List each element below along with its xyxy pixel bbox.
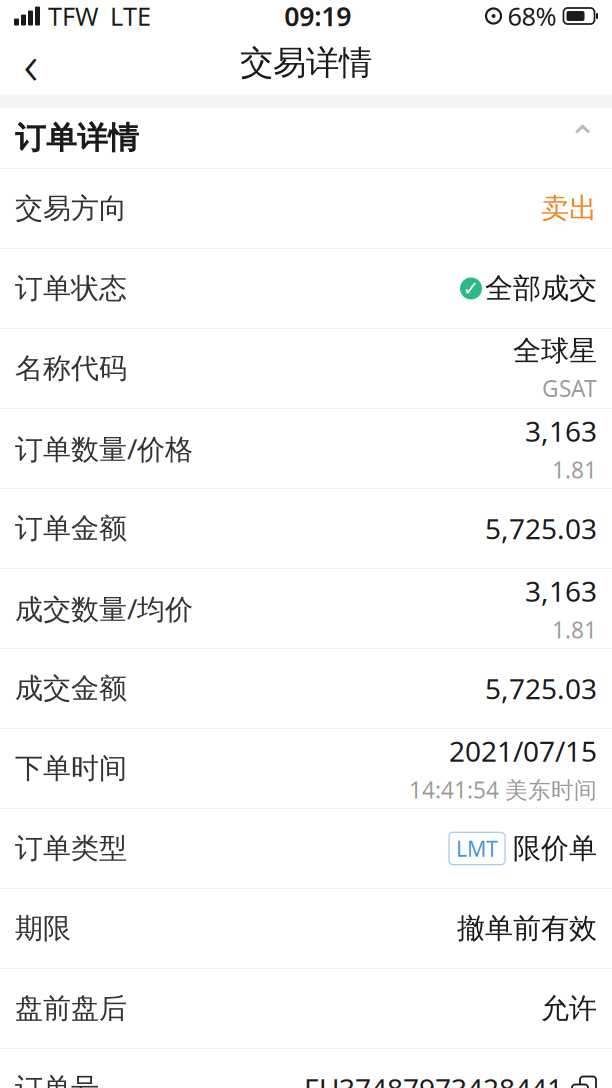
staticText: ✓ [462, 277, 479, 300]
staticText: 限价单 [513, 831, 597, 866]
staticText: GSAT [542, 373, 597, 403]
staticText: 卖出 [541, 191, 597, 226]
staticText: 3,163 [525, 572, 597, 610]
staticText: 全部成交 [485, 271, 597, 306]
staticText: 交易方向 [15, 191, 127, 226]
staticText: 5,725.03 [485, 670, 597, 707]
staticText: 撤单前有效 [457, 911, 597, 946]
staticText: 09:19 [284, 0, 351, 34]
staticText: LTE [110, 0, 151, 33]
staticText: 3,163 [525, 412, 597, 450]
staticText: 成交金额 [15, 671, 127, 706]
button[interactable]: 订单详情 [0, 108, 612, 168]
staticText: ⌃ [568, 118, 597, 158]
staticText: LMT [456, 834, 498, 863]
staticText: 68% [507, 0, 556, 33]
staticText: 订单详情 [15, 119, 139, 157]
staticText: 1.81 [552, 454, 597, 485]
staticText: 14:41:54 美东时间 [409, 774, 597, 805]
staticText: 交易详情 [240, 42, 372, 83]
staticText: TFW [48, 0, 99, 33]
staticText: 5,725.03 [485, 510, 597, 547]
staticText: 全球星 [513, 334, 597, 368]
staticText: 订单数量/价格 [15, 430, 193, 467]
staticText: 允许 [541, 991, 597, 1026]
staticText: 期限 [15, 911, 71, 946]
staticText: FU37487973428441 [304, 1070, 563, 1088]
button[interactable]: Copy order number [563, 1075, 597, 1088]
staticText: 订单金额 [15, 511, 127, 546]
staticText: 1.81 [552, 614, 597, 645]
staticText: 下单时间 [15, 751, 127, 786]
staticText: 名称代码 [15, 351, 127, 386]
staticText: 订单状态 [15, 271, 127, 306]
button[interactable]: Back [0, 33, 62, 93]
staticText: 2021/07/15 [449, 732, 597, 770]
staticText: ‹ [23, 26, 38, 100]
staticText: 成交数量/均价 [15, 590, 193, 627]
staticText: 盘前盘后 [15, 991, 127, 1026]
staticText: 订单类型 [15, 831, 127, 866]
staticText: 订单号 [15, 1071, 99, 1088]
